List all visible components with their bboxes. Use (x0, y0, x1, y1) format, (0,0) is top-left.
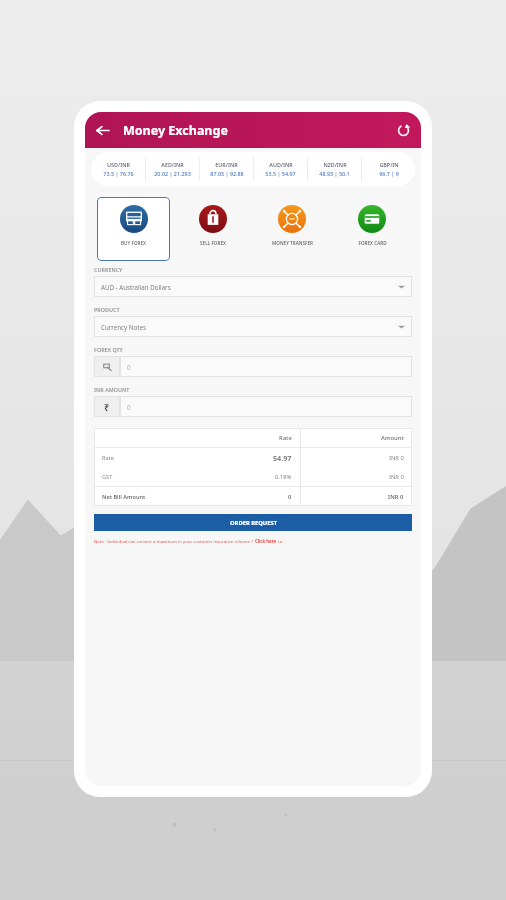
button[interactable]: AUD - Australian Dollars (94, 276, 412, 297)
staticText: INR 0 (388, 493, 404, 501)
button[interactable]: AED/INR (146, 161, 199, 177)
staticText: AUD - Australian Dollars (101, 283, 398, 291)
staticText: ₹ (104, 401, 110, 413)
staticText: 96.7 | 9 (379, 170, 399, 177)
staticText: EUR/INR (215, 161, 238, 168)
staticText: 0 (288, 493, 292, 501)
staticText: to.. (277, 538, 285, 544)
staticText: AUD/INR (269, 161, 293, 168)
staticText: 73.5 | 76.76 (103, 170, 134, 177)
staticText: INR 0 (389, 473, 404, 481)
staticText: 0.18% (275, 473, 292, 481)
button[interactable]: Refresh (391, 118, 415, 142)
button[interactable]: EUR/INR (200, 161, 253, 177)
staticText: USD/INR (107, 161, 130, 168)
staticText: SELL FOREX (200, 240, 226, 246)
staticText: INR AMOUNT (94, 386, 130, 393)
button[interactable]: BUY FOREX (97, 197, 170, 261)
button[interactable]: AUD/INR (254, 161, 307, 177)
staticText: 0 (127, 403, 131, 411)
button[interactable]: SELL FOREX (173, 197, 252, 261)
button[interactable]: USD/INR (91, 161, 145, 177)
staticText: GST (102, 473, 275, 481)
button[interactable]: NZD/INR (308, 161, 361, 177)
staticText: 20.02 | 21.293 (154, 170, 191, 177)
staticText: AED/INR (161, 161, 184, 168)
staticText: 53.5 | 54.97 (265, 170, 296, 177)
button[interactable]: Back (89, 117, 115, 143)
button[interactable]: ₹ (94, 396, 412, 417)
button[interactable]: MONEY TRANSFER (252, 197, 332, 261)
button[interactable]: Click here (255, 538, 277, 544)
staticText: Rate (102, 454, 273, 462)
staticText: 87.05 | 92.88 (210, 170, 244, 177)
staticText: 48.93 | 50.1 (319, 170, 350, 177)
staticText: 54.97 (273, 453, 292, 463)
staticText: MONEY TRANSFER (272, 240, 313, 246)
staticText: Rate (279, 434, 292, 442)
button[interactable]: Currency Notes (94, 316, 412, 337)
button[interactable]: 0 (94, 356, 412, 377)
staticText: Currency Notes (101, 323, 398, 331)
staticText: 0 (127, 363, 131, 371)
staticText: PRODUCT (94, 306, 120, 313)
staticText: GBP/IN (379, 161, 399, 168)
staticText: CURRENCY (94, 266, 123, 273)
staticText: Net Bill Amount (102, 493, 288, 501)
button[interactable]: ORDER REQUEST (94, 514, 412, 531)
staticText: BUY FOREX (121, 240, 146, 246)
staticText: NZD/INR (323, 161, 347, 168)
staticText: INR 0 (389, 454, 404, 462)
staticText: Amount (381, 434, 404, 442)
staticText: FOREX CARD (358, 240, 387, 246)
button[interactable]: FOREX CARD (332, 197, 412, 261)
staticText: FOREX QTY (94, 346, 123, 353)
staticText: ORDER REQUEST (230, 519, 277, 527)
staticText: Money Exchange (123, 122, 228, 139)
button[interactable]: GBP/IN (362, 161, 415, 177)
staticText: Note : Individual can convert a maximum … (94, 538, 255, 544)
